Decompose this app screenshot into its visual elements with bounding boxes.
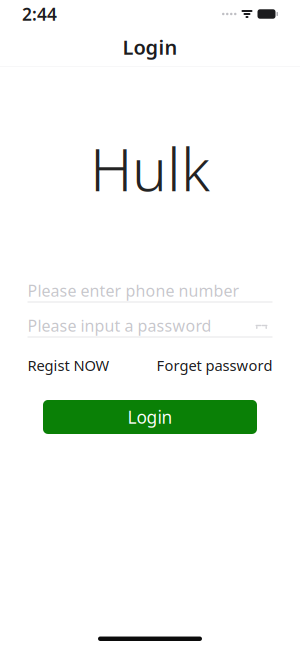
staticText: Forget password: [156, 355, 272, 375]
staticText: Regist NOW: [27, 355, 109, 375]
staticText: Login: [127, 405, 172, 428]
button[interactable]: Show password: [250, 315, 272, 335]
button[interactable]: Regist NOW: [27, 351, 109, 379]
button[interactable]: Login: [43, 400, 257, 434]
staticText: 2:44: [22, 2, 57, 25]
staticText: Login: [122, 34, 177, 60]
staticText: Please enter phone number: [27, 280, 239, 301]
staticText: Hulk: [90, 129, 210, 207]
staticText: Please input a password: [27, 315, 211, 336]
button[interactable]: Forget password: [156, 351, 272, 379]
